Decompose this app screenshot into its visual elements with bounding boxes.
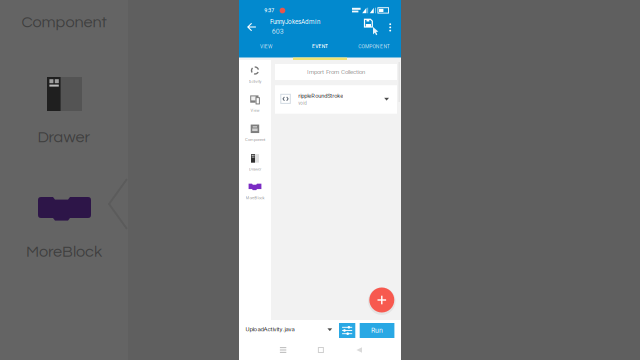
staticText: MoreBlock <box>245 195 264 200</box>
staticText: MoreBlock <box>26 243 102 260</box>
staticText: Run <box>371 326 383 334</box>
staticText: COMPONENT <box>358 44 390 49</box>
staticText: FunnyJokesAdmin <box>270 18 320 25</box>
staticText: Drawer <box>249 167 261 172</box>
button[interactable]: View <box>239 91 271 118</box>
staticText: void <box>298 101 306 106</box>
staticText: Activity <box>248 79 261 84</box>
staticText: Drawer <box>37 129 90 146</box>
button[interactable]: Add <box>367 285 396 314</box>
staticText: Component <box>245 137 265 142</box>
button[interactable]: More options <box>384 19 396 35</box>
button[interactable]: COMPONENT <box>347 40 401 52</box>
button[interactable]: MoreBlock <box>239 178 271 205</box>
button[interactable]: EVENT <box>293 40 347 52</box>
button[interactable]: Back <box>344 340 374 360</box>
button[interactable]: Back <box>242 17 262 37</box>
button[interactable]: Activity <box>239 62 271 89</box>
button[interactable]: Drawer <box>239 150 271 177</box>
staticText: EVENT <box>312 44 328 49</box>
staticText: rippleRoundStroke <box>298 92 343 99</box>
staticText: VIEW <box>260 44 272 49</box>
staticText: Component <box>21 14 106 31</box>
button[interactable]: Run <box>360 323 394 338</box>
button[interactable]: Save <box>364 19 380 35</box>
staticText: View <box>250 108 259 113</box>
button[interactable]: rippleRoundStroke <box>275 85 397 114</box>
button[interactable]: Import From Collection <box>275 64 397 80</box>
button[interactable]: Recent apps <box>268 340 298 360</box>
button[interactable]: UploadActivity.java <box>245 320 337 340</box>
staticText: 603 <box>272 27 284 35</box>
button[interactable]: Build settings <box>339 323 355 338</box>
button[interactable]: Component <box>239 120 271 147</box>
button[interactable]: Home <box>306 340 336 360</box>
staticText: 9:37 <box>264 7 274 14</box>
staticText: UploadActivity.java <box>245 326 294 333</box>
button[interactable]: VIEW <box>239 40 293 52</box>
staticText: Import From Collection <box>307 68 365 75</box>
